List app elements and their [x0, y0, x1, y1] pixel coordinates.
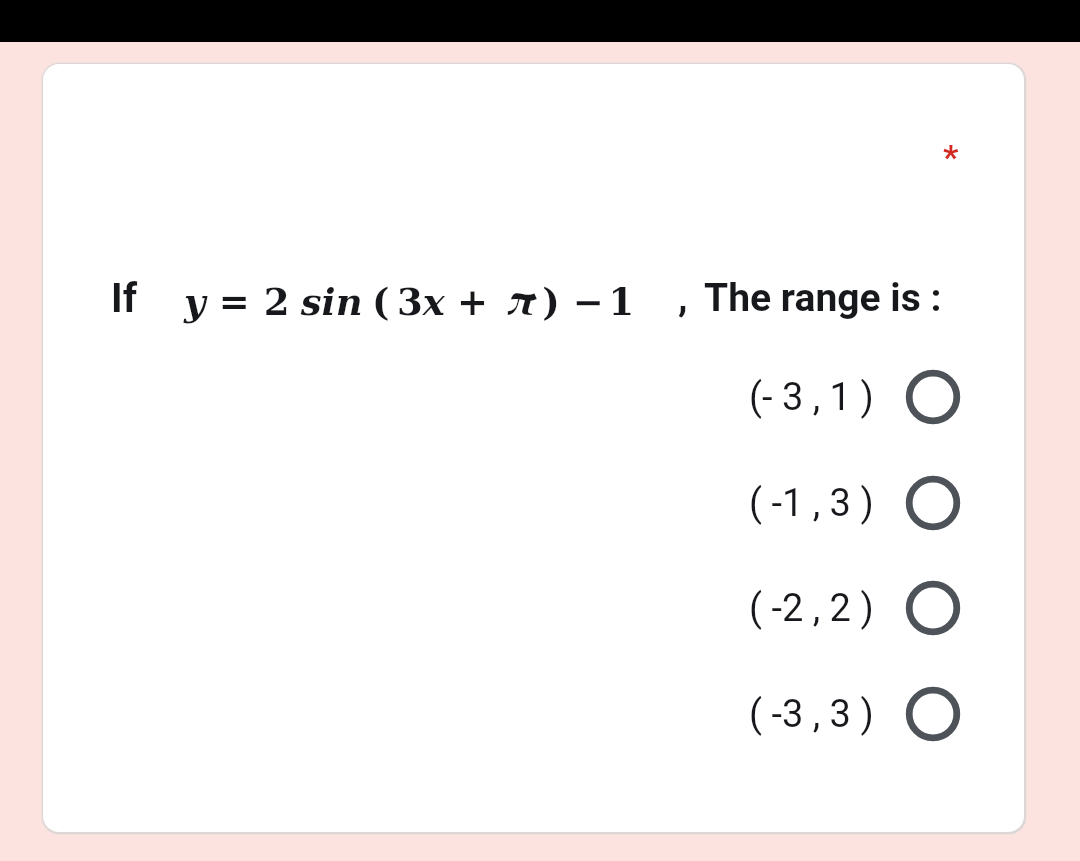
other: Choose answer ( -2 , 2 ) [905, 580, 961, 636]
other: Choose answer (- 3 , 1 ) [905, 369, 961, 425]
button[interactable]: ( -1 , 3 ) [641, 463, 961, 543]
other: Choose answer ( -1 , 3 ) [905, 475, 961, 531]
staticText: ( -3 , 3 ) [749, 692, 874, 737]
button[interactable]: ( -2 , 2 ) [641, 568, 961, 648]
staticText: ( -2 , 2 ) [749, 586, 874, 631]
other: Choose answer ( -3 , 3 ) [905, 686, 961, 742]
staticText: ( -1 , 3 ) [749, 481, 874, 526]
staticText: * [943, 137, 959, 177]
button[interactable]: (- 3 , 1 ) [641, 357, 961, 437]
staticText: (- 3 , 1 ) [749, 375, 874, 420]
staticText: If [111, 275, 138, 322]
button[interactable]: ( -3 , 3 ) [641, 674, 961, 754]
staticText: , The range is : [678, 275, 942, 321]
staticText: y = 2 sin ( 3x + π ) − 1 [184, 268, 635, 328]
